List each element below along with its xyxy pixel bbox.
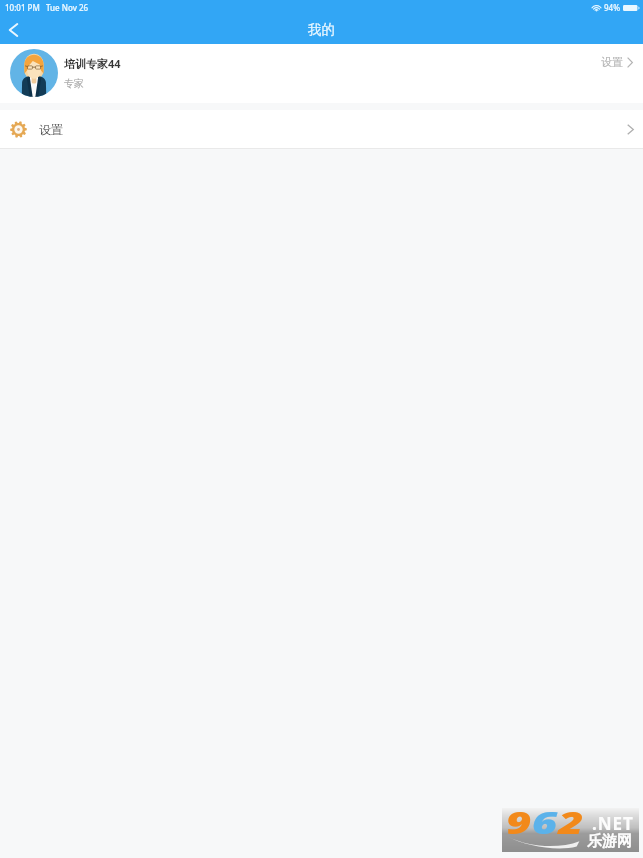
staticText: 9 — [506, 802, 532, 843]
staticText: 94% — [604, 2, 620, 13]
staticText: 培训专家44 — [64, 56, 121, 71]
button[interactable]: 设置 — [601, 55, 633, 69]
staticText: 10:01 PM — [5, 2, 40, 13]
staticText: 6 — [532, 802, 558, 843]
button[interactable]: 设置 — [0, 110, 643, 149]
staticText: 我的 — [308, 21, 335, 38]
staticText: 设置 — [601, 55, 623, 69]
staticText: 专家 — [64, 77, 84, 90]
staticText: 2 — [558, 802, 584, 843]
staticText: 设置 — [39, 122, 63, 137]
staticText: Tue Nov 26 — [46, 2, 89, 13]
button[interactable]: 培训专家44 — [0, 44, 643, 103]
button[interactable]: Back — [0, 16, 26, 44]
staticText: .NET — [592, 812, 634, 835]
staticText: 乐游网 — [587, 832, 632, 851]
